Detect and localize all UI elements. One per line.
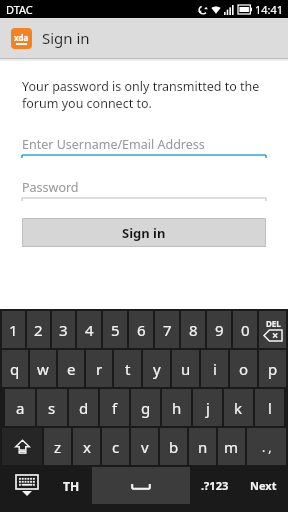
button[interactable]: 7: [155, 311, 179, 348]
staticText: Sign in: [122, 224, 166, 242]
button[interactable]: f: [100, 389, 129, 426]
staticText: 3: [59, 320, 68, 340]
button[interactable]: 4: [77, 311, 101, 348]
staticText: p: [268, 359, 278, 379]
staticText: 14:41: [255, 2, 284, 17]
button[interactable]: 3: [52, 311, 75, 348]
button[interactable]: v: [131, 428, 158, 465]
staticText: w: [37, 359, 49, 379]
staticText: Password: [22, 179, 79, 196]
button[interactable]: a: [5, 389, 35, 426]
staticText: r: [96, 359, 103, 379]
staticText: xda: [14, 32, 29, 43]
staticText: l: [268, 398, 272, 418]
button[interactable]: 5: [103, 311, 127, 348]
button[interactable]: h: [162, 389, 191, 426]
staticText: f: [112, 398, 118, 418]
button[interactable]: TH: [53, 467, 90, 504]
button[interactable]: Enter Username/Email Address: [22, 133, 266, 159]
staticText: a: [16, 398, 25, 418]
staticText: 7: [163, 320, 172, 340]
staticText: c: [112, 437, 120, 457]
button[interactable]: t: [114, 350, 141, 387]
button[interactable]: 1: [2, 311, 25, 348]
button[interactable]: i: [201, 350, 228, 387]
button[interactable]: s: [37, 389, 67, 426]
button[interactable]: .?123: [192, 467, 238, 504]
staticText: q: [10, 359, 20, 379]
button[interactable]: q: [2, 350, 28, 387]
staticText: DEL: [266, 318, 281, 329]
button[interactable]: 2: [27, 311, 50, 348]
staticText: .?123: [201, 478, 229, 493]
staticText: m: [224, 437, 239, 457]
staticText: Enter Username/Email Address: [22, 136, 205, 153]
staticText: 9: [215, 320, 224, 340]
button[interactable]: g: [131, 389, 160, 426]
staticText: TH: [63, 478, 80, 494]
staticText: k: [234, 398, 243, 418]
button[interactable]: Next: [240, 467, 286, 504]
button[interactable]: k: [224, 389, 253, 426]
button[interactable]: Sign in: [23, 219, 265, 246]
staticText: n: [198, 437, 208, 457]
button[interactable]: n: [189, 428, 216, 465]
staticText: z: [54, 437, 62, 457]
button[interactable]: Space: [92, 467, 190, 504]
staticText: g: [141, 398, 151, 418]
button[interactable]: . ,: [247, 428, 286, 465]
staticText: e: [67, 359, 76, 379]
staticText: i: [213, 359, 217, 379]
button[interactable]: Delete: [259, 311, 286, 348]
button[interactable]: u: [172, 350, 199, 387]
staticText: t: [125, 359, 131, 379]
staticText: 4: [85, 320, 94, 340]
button[interactable]: b: [160, 428, 187, 465]
button[interactable]: Shift: [2, 428, 42, 465]
button[interactable]: Hide keyboard: [2, 467, 51, 504]
button[interactable]: m: [218, 428, 245, 465]
staticText: v: [141, 437, 149, 457]
staticText: y: [153, 359, 161, 379]
button[interactable]: 6: [129, 311, 153, 348]
staticText: . ,: [262, 439, 272, 455]
button[interactable]: z: [44, 428, 71, 465]
staticText: h: [172, 398, 182, 418]
button[interactable]: p: [259, 350, 286, 387]
staticText: 0: [241, 320, 250, 340]
staticText: b: [169, 437, 179, 457]
staticText: Sign in: [42, 28, 90, 48]
staticText: s: [48, 398, 56, 418]
staticText: d: [79, 398, 89, 418]
button[interactable]: y: [143, 350, 170, 387]
button[interactable]: 8: [181, 311, 205, 348]
staticText: 2: [34, 320, 43, 340]
button[interactable]: d: [69, 389, 98, 426]
staticText: 5: [111, 320, 120, 340]
staticText: o: [239, 359, 249, 379]
staticText: x: [83, 437, 91, 457]
staticText: u: [181, 359, 191, 379]
staticText: 6: [137, 320, 146, 340]
button[interactable]: e: [58, 350, 84, 387]
staticText: j: [206, 398, 210, 418]
staticText: DTAC: [6, 2, 33, 17]
button[interactable]: c: [102, 428, 129, 465]
button[interactable]: 9: [207, 311, 231, 348]
button[interactable]: j: [193, 389, 222, 426]
button[interactable]: w: [30, 350, 56, 387]
button[interactable]: Password: [22, 176, 266, 202]
staticText: Next: [250, 478, 277, 493]
staticText: Your password is only transmitted to the…: [22, 78, 260, 111]
button[interactable]: x: [73, 428, 100, 465]
button[interactable]: xda: [0, 18, 288, 58]
staticText: 1: [9, 320, 18, 340]
staticText: 8: [189, 320, 198, 340]
button[interactable]: 0: [233, 311, 257, 348]
button[interactable]: r: [86, 350, 112, 387]
button[interactable]: o: [230, 350, 257, 387]
button[interactable]: l: [255, 389, 284, 426]
